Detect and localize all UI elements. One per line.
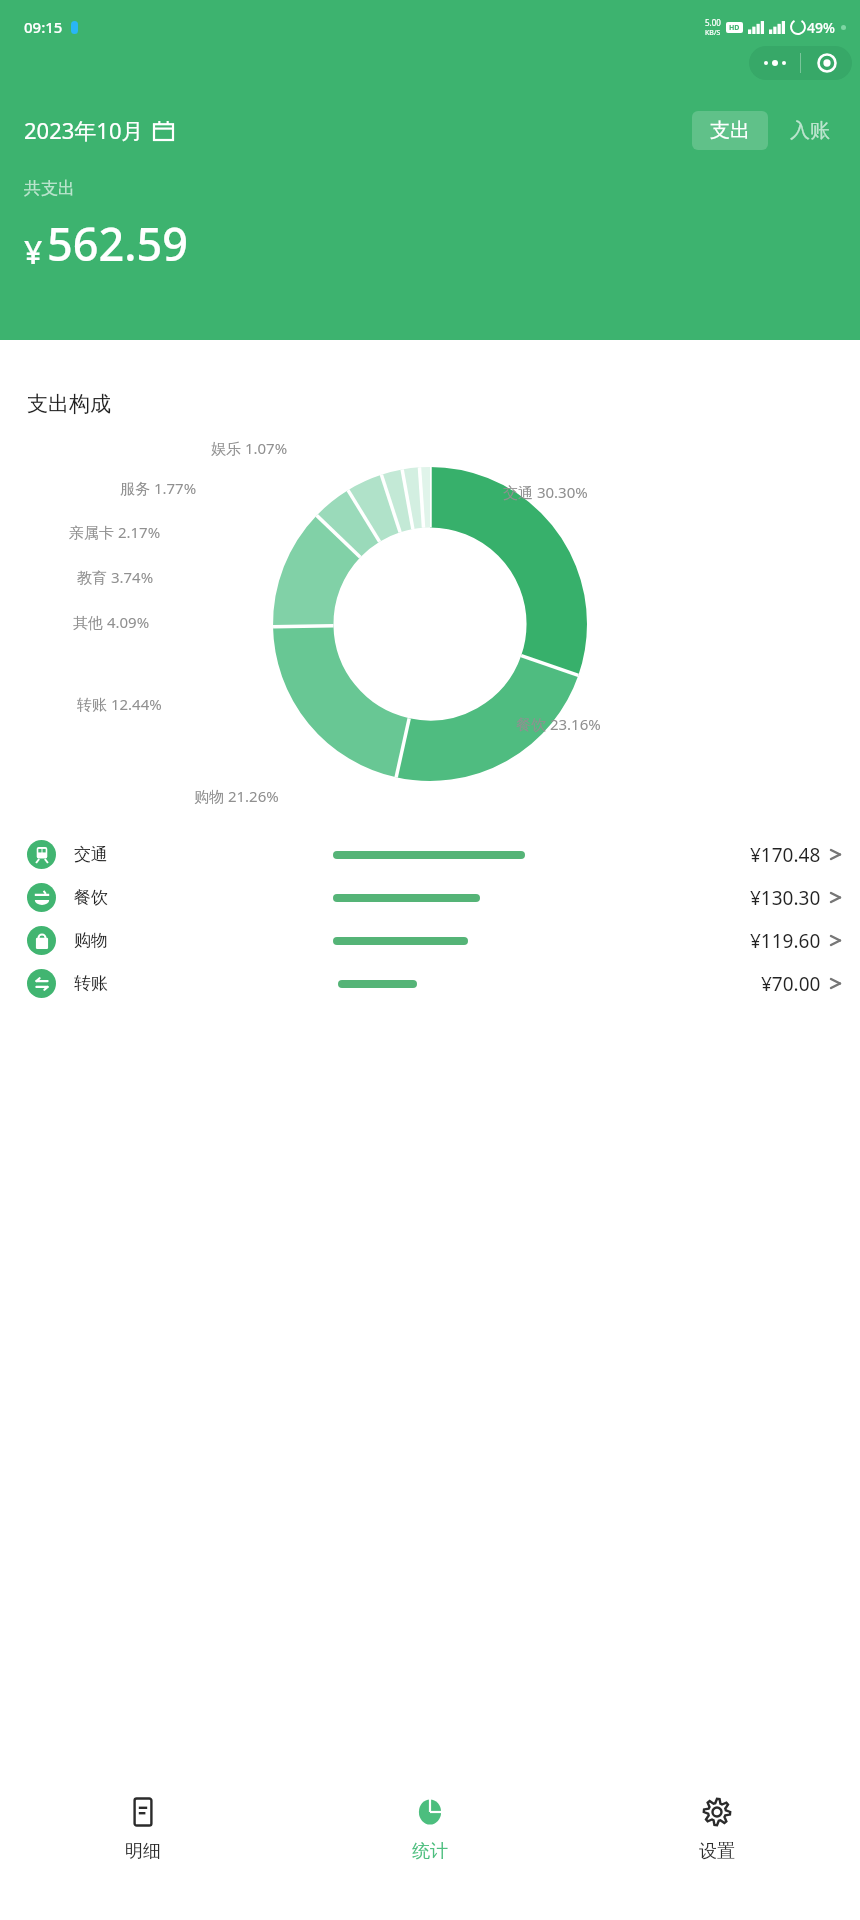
button[interactable]: 交通 [0, 833, 860, 876]
staticText: ¥170.48 [750, 842, 821, 868]
staticText: 转账 12.44% [77, 694, 162, 714]
button[interactable]: More options [749, 46, 800, 80]
staticText: 明细 [125, 1840, 161, 1863]
button[interactable]: 转账 [0, 962, 860, 1005]
staticText: 购物 [74, 930, 108, 951]
staticText: 亲属卡 2.17% [69, 522, 161, 542]
staticText: 2023年10月 [24, 115, 144, 145]
staticText: 共支出 [24, 178, 75, 199]
staticText: 交通 [74, 844, 108, 865]
staticText: 餐饮 23.16% [516, 714, 601, 734]
button[interactable]: 明细 [0, 1775, 286, 1920]
staticText: 入账 [790, 118, 830, 143]
staticText: 娱乐 1.07% [211, 438, 288, 458]
staticText: KB/S [705, 28, 721, 38]
button[interactable]: 2023年10月 [24, 115, 173, 145]
staticText: 支出 [710, 118, 750, 143]
button[interactable]: 支出 [692, 111, 768, 150]
staticText: ¥70.00 [761, 971, 821, 997]
staticText: ¥ [24, 230, 43, 274]
staticText: 562.59 [47, 213, 188, 274]
staticText: 教育 3.74% [77, 567, 154, 587]
button[interactable]: 入账 [784, 111, 836, 150]
staticText: 统计 [412, 1840, 448, 1863]
button[interactable]: 购物 [0, 919, 860, 962]
staticText: ¥119.60 [750, 928, 821, 954]
button[interactable]: 统计 [286, 1775, 573, 1920]
staticText: 其他 4.09% [73, 612, 150, 632]
staticText: 餐饮 [74, 887, 108, 908]
staticText: 49% [807, 18, 835, 37]
button[interactable]: Close [801, 46, 852, 80]
staticText: 设置 [699, 1840, 735, 1863]
staticText: 转账 [74, 973, 108, 994]
staticText: HD [729, 23, 740, 33]
staticText: 支出构成 [27, 391, 111, 417]
staticText: ¥130.30 [750, 885, 821, 911]
staticText: 09:15 [24, 17, 63, 37]
staticText: 购物 21.26% [194, 786, 279, 806]
staticText: 交通 30.30% [503, 482, 588, 502]
button[interactable]: 设置 [573, 1775, 860, 1920]
staticText: 服务 1.77% [120, 478, 197, 498]
button[interactable]: 餐饮 [0, 876, 860, 919]
staticText: 5.00 [705, 17, 721, 28]
